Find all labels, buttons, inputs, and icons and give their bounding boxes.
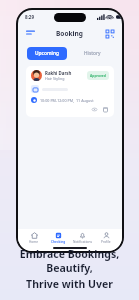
- button[interactable]: View: [91, 106, 98, 113]
- button[interactable]: Home: [22, 231, 46, 244]
- button[interactable]: Notifications: [70, 231, 94, 244]
- button[interactable]: Upcoming: [27, 47, 67, 60]
- staticText: History: [84, 50, 101, 57]
- staticText: Hair Styling: [45, 76, 65, 81]
- button[interactable]: Menu: [25, 28, 36, 39]
- button[interactable]: History: [72, 47, 113, 60]
- staticText: Home: [29, 240, 39, 244]
- button[interactable]: Profile: [94, 231, 118, 244]
- button[interactable]: Rakhi Darsh: [26, 66, 114, 117]
- staticText: Embrace Bookings, Beautify,: [0, 247, 139, 275]
- staticText: Thrive with Uver: [26, 277, 113, 291]
- staticText: 8:29: [25, 14, 34, 20]
- staticText: Notifications: [73, 240, 92, 244]
- staticText: Rakhi Darsh: [45, 70, 72, 76]
- staticText: 10:00 PM-12:00 PM, 11 August: [40, 98, 94, 103]
- staticText: Upcoming: [35, 50, 59, 57]
- button[interactable]: Delete: [102, 106, 109, 113]
- staticText: Booking: [56, 29, 83, 38]
- staticText: Profile: [101, 240, 111, 244]
- button[interactable]: Checking: [46, 231, 70, 244]
- staticText: Checking: [51, 240, 66, 244]
- button[interactable]: Scan QR code: [104, 28, 115, 39]
- staticText: Approved: [90, 73, 106, 78]
